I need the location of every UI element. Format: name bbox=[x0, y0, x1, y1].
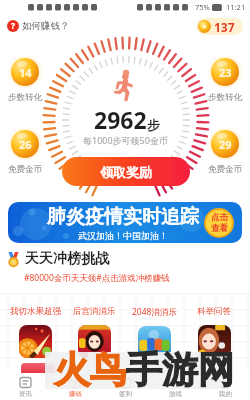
staticText: 天天冲榜挑战 bbox=[25, 250, 109, 268]
staticText: 2962 bbox=[94, 104, 147, 135]
staticText: 步数转化 bbox=[8, 92, 42, 103]
staticText: 武汉加油！中国加油！ bbox=[78, 230, 168, 241]
button[interactable]: 我切水果超强 bbox=[6, 292, 65, 400]
button[interactable]: 游戏 bbox=[150, 373, 200, 400]
button[interactable]: 赚钱 bbox=[50, 373, 100, 400]
staticText: ? bbox=[11, 20, 16, 32]
button[interactable]: 资讯 bbox=[0, 373, 50, 400]
button[interactable]: 14 bbox=[3, 52, 47, 103]
staticText: #80000金币天天领#点击游戏冲榜赚钱 bbox=[24, 272, 170, 284]
staticText: 2048消消乐 bbox=[132, 306, 177, 318]
staticText: 我切水果超强 bbox=[10, 306, 61, 317]
staticText: 肺炎疫情实时追踪 bbox=[47, 205, 199, 229]
button[interactable]: 天天冲榜挑战 bbox=[0, 250, 250, 288]
staticText: 点击 bbox=[211, 212, 228, 223]
button[interactable]: ? bbox=[5, 18, 72, 34]
button[interactable]: 我的 bbox=[200, 373, 250, 400]
staticText: 免费金币 bbox=[8, 164, 42, 175]
staticText: 赚钱 bbox=[69, 390, 82, 398]
staticText: 游戏 bbox=[169, 390, 182, 398]
button[interactable]: 23 bbox=[203, 52, 247, 103]
staticText: 我的 bbox=[219, 390, 232, 398]
staticText: 领取奖励 bbox=[100, 164, 152, 180]
staticText: 手游网 bbox=[126, 347, 234, 392]
staticText: 14 bbox=[19, 65, 32, 80]
staticText: 每1000步可领50金币 bbox=[83, 134, 168, 146]
staticText: 查看 bbox=[211, 223, 228, 234]
button[interactable]: 点击 bbox=[206, 210, 232, 236]
staticText: 科举问答 bbox=[197, 306, 231, 317]
button[interactable]: 26 bbox=[3, 124, 47, 175]
staticText: 如何赚钱？ bbox=[22, 20, 70, 32]
button[interactable]: 2048消消乐 bbox=[124, 292, 184, 400]
staticText: 137 bbox=[214, 19, 235, 35]
button[interactable]: 后宫消消乐 bbox=[65, 292, 124, 400]
staticText: 后宫消消乐 bbox=[73, 306, 116, 317]
button[interactable]: 科举问答 bbox=[184, 292, 244, 400]
staticText: 29 bbox=[219, 137, 232, 152]
staticText: 11:21 bbox=[226, 2, 246, 12]
staticText: 26 bbox=[19, 137, 32, 152]
staticText: 资讯 bbox=[19, 390, 32, 398]
staticText: 23 bbox=[219, 65, 232, 80]
button[interactable]: 肺炎疫情实时追踪 bbox=[8, 202, 242, 243]
staticText: 步数转化 bbox=[208, 92, 242, 103]
staticText: 免费金币 bbox=[208, 164, 242, 175]
button[interactable]: 签到 bbox=[100, 373, 150, 400]
button[interactable]: 29 bbox=[203, 124, 247, 175]
staticText: 步 bbox=[147, 117, 160, 133]
staticText: 火鸟 bbox=[54, 347, 126, 392]
button[interactable]: 领取奖励 bbox=[62, 157, 190, 186]
button[interactable]: 137 bbox=[196, 18, 243, 35]
staticText: 75% bbox=[195, 2, 210, 12]
staticText: 签到 bbox=[119, 390, 132, 398]
